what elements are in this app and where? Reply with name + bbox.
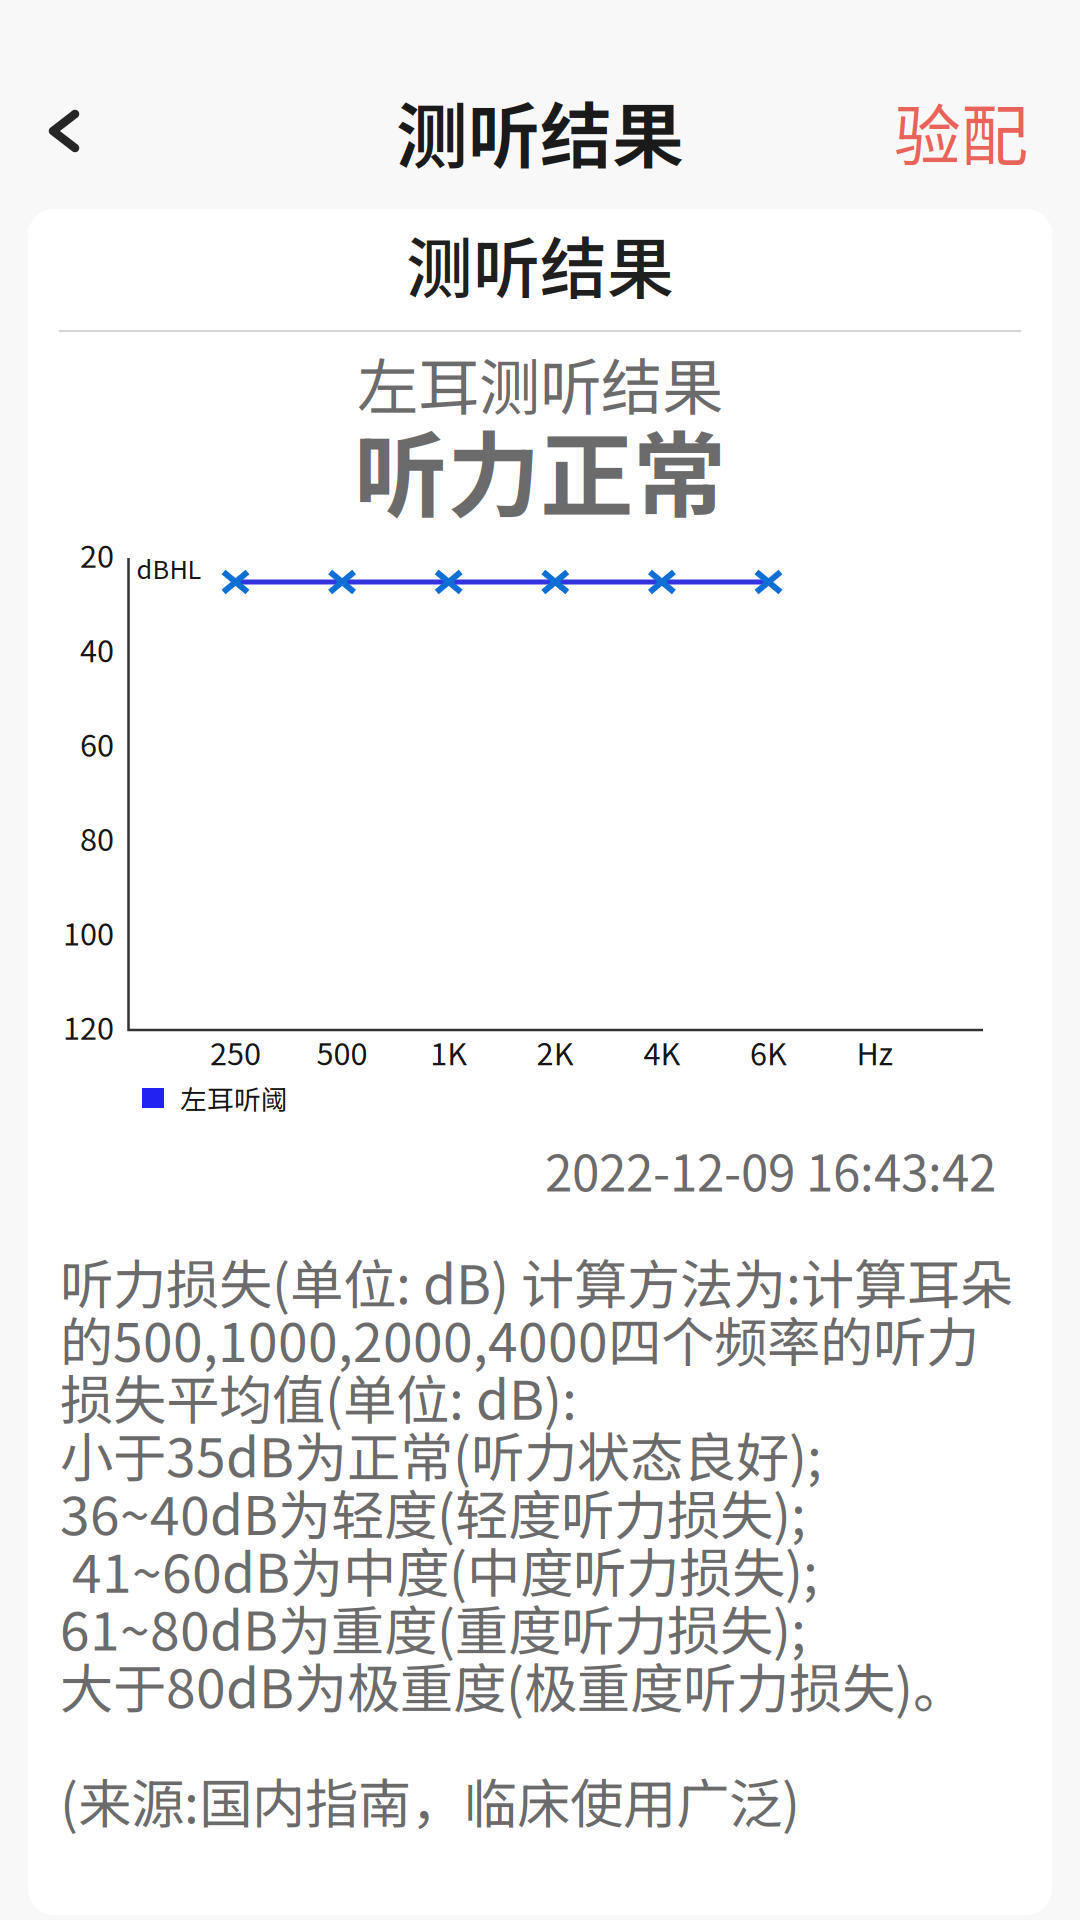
staticText: 的500,1000,2000,4000四个频率的听力 [60,1300,979,1377]
staticText: 小于35dB为正常(听力状态良好); [60,1415,822,1493]
staticText: 500 [317,1030,368,1074]
staticText: 80 [80,815,114,860]
staticText: 60 [80,721,114,765]
staticText: dBHL [136,550,201,586]
staticText: 100 [63,910,114,954]
staticText: 损失平均值(单位: dB): [60,1358,577,1435]
staticText: 验配 [894,83,1028,179]
staticText: 测听结果 [406,216,674,312]
staticText: 36~40dB为轻度(轻度听力损失); [60,1473,806,1550]
staticText: 左耳听阈 [180,1079,288,1117]
staticText: (来源:国内指南，临床使用广泛) [60,1762,800,1839]
staticText: 250 [210,1030,261,1074]
staticText: 大于80dB为极重度(极重度听力损失)。 [60,1646,966,1723]
staticText: 120 [63,1004,114,1049]
staticText: 听力损失(单位: dB) 计算方法为:计算耳朵 [60,1242,1013,1320]
staticText: 2K [537,1030,574,1074]
staticText: 2022-12-09 16:43:42 [545,1134,996,1206]
staticText: 4K [643,1030,680,1074]
staticText: 61~80dB为重度(重度听力损失); [60,1589,806,1666]
staticText: 左耳测听结果 [357,339,723,427]
staticText: Hz [857,1030,894,1074]
staticText: 测听结果 [396,79,684,183]
staticText: 40 [80,627,114,671]
staticText: 41~60dB为中度(中度听力损失); [60,1531,818,1608]
staticText: 1K [430,1030,467,1074]
staticText: 6K [750,1030,787,1074]
staticText: 20 [80,532,114,577]
button[interactable]: 返回 [1,64,125,198]
button[interactable]: 验配 [854,41,1070,221]
staticText: 听力正常 [354,401,726,536]
